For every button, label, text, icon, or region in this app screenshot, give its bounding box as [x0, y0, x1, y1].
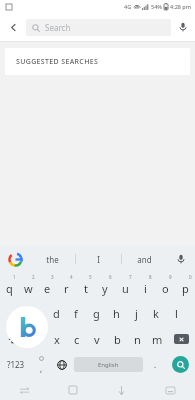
button[interactable]: c [67, 326, 87, 352]
staticText: 54% [151, 3, 162, 10]
staticText: h [113, 306, 120, 321]
button[interactable]: a [9, 300, 28, 326]
button[interactable]: . [145, 352, 165, 377]
button[interactable]: h [106, 300, 126, 326]
staticText: e [44, 281, 51, 296]
button[interactable]: and [122, 246, 167, 272]
button[interactable]: Home [48, 380, 97, 400]
staticText: m [152, 332, 163, 347]
staticText: 1 [13, 274, 16, 280]
staticText: 7 [129, 274, 132, 280]
staticText: 5 [89, 274, 92, 280]
staticText: . [154, 359, 157, 370]
staticText: u [122, 281, 129, 296]
button[interactable]: Hide keyboard [97, 380, 146, 400]
staticText: I [97, 254, 100, 265]
staticText: s [35, 306, 41, 321]
staticText: 6 [109, 274, 112, 280]
staticText: g [93, 306, 100, 321]
staticText: j [135, 306, 138, 321]
button[interactable]: i [135, 273, 155, 300]
button[interactable]: the [30, 246, 75, 272]
staticText: i [144, 281, 147, 296]
button[interactable]: Search [172, 356, 189, 373]
staticText: l [175, 306, 178, 321]
button[interactable]: n [127, 326, 147, 352]
staticText: the [46, 254, 59, 265]
button[interactable]: q [0, 273, 19, 300]
staticText: a [15, 306, 22, 321]
button[interactable]: Google [0, 246, 30, 272]
staticText: 4G [124, 3, 132, 10]
button[interactable]: r [57, 273, 76, 300]
button[interactable]: v [87, 326, 107, 352]
button[interactable]: ?123 [0, 352, 31, 377]
staticText: t [84, 281, 88, 296]
staticText: 2 [32, 274, 35, 280]
staticText: and [137, 254, 152, 265]
button[interactable]: b [107, 326, 127, 352]
button[interactable]: x [47, 326, 67, 352]
staticText: 4:28 pm [170, 3, 191, 10]
staticText: c [74, 332, 80, 347]
staticText: o [162, 281, 169, 296]
button[interactable]: SUGGESTED SEARCHES [5, 48, 190, 75]
button[interactable]: s [28, 300, 47, 326]
button[interactable]: m [147, 326, 167, 352]
button[interactable]: Bixby [6, 306, 48, 348]
staticText: z [34, 332, 40, 347]
button[interactable]: o [155, 273, 175, 300]
button[interactable]: Shift [0, 326, 27, 352]
staticText: 4 [70, 274, 73, 280]
staticText: 9 [169, 274, 172, 280]
button[interactable]: l [166, 300, 186, 326]
staticText: v [94, 332, 100, 347]
staticText: , [40, 363, 43, 374]
button[interactable]: p [175, 273, 195, 300]
button[interactable]: I [76, 246, 121, 272]
button[interactable]: Back [0, 13, 26, 41]
staticText: n [134, 332, 141, 347]
button[interactable]: Backspace [167, 326, 195, 352]
button[interactable]: u [115, 273, 135, 300]
button[interactable]: k [146, 300, 166, 326]
staticText: d [53, 306, 60, 321]
staticText: r [64, 281, 69, 296]
button[interactable]: g [86, 300, 106, 326]
staticText: 0 [189, 274, 192, 280]
staticText: English [98, 361, 119, 369]
button[interactable]: Voice search [171, 13, 195, 41]
button[interactable]: f [66, 300, 86, 326]
button[interactable]: English [74, 357, 143, 372]
button[interactable]: w [19, 273, 38, 300]
button[interactable]: Change language [52, 352, 72, 377]
staticText: x [54, 332, 60, 347]
button[interactable]: Switch keyboard [146, 380, 195, 400]
button[interactable]: Voice input [167, 246, 195, 272]
staticText: ?123 [7, 359, 25, 370]
staticText: SUGGESTED SEARCHES [16, 57, 99, 67]
staticText: w [24, 281, 33, 296]
button[interactable]: Comma and settings [31, 352, 52, 377]
staticText: 8 [149, 274, 152, 280]
button[interactable]: j [126, 300, 146, 326]
staticText: k [153, 306, 159, 321]
staticText: y [102, 281, 108, 296]
button[interactable]: d [47, 300, 66, 326]
staticText: 3 [51, 274, 54, 280]
staticText: Search [45, 22, 71, 33]
staticText: b [114, 332, 121, 347]
button[interactable]: Recents [0, 380, 48, 400]
staticText: f [74, 306, 78, 321]
staticText: p [182, 281, 189, 296]
button[interactable]: t [76, 273, 95, 300]
button[interactable]: e [38, 273, 57, 300]
button[interactable]: y [95, 273, 115, 300]
button[interactable]: z [27, 326, 47, 352]
button[interactable]: Search [26, 19, 171, 36]
staticText: q [6, 281, 13, 296]
